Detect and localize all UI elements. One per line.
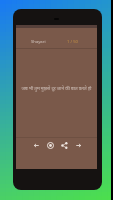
button[interactable]: Next	[71, 137, 85, 153]
button[interactable]: Favourite	[43, 137, 57, 153]
button[interactable]: Shayari	[31, 39, 46, 45]
staticText: जब भी तुम मुझसे दूर जाने की बात करते हो	[21, 85, 92, 91]
staticText: 1 / 50	[67, 39, 78, 45]
button[interactable]: Previous	[29, 137, 43, 153]
button[interactable]: Share	[57, 137, 71, 153]
